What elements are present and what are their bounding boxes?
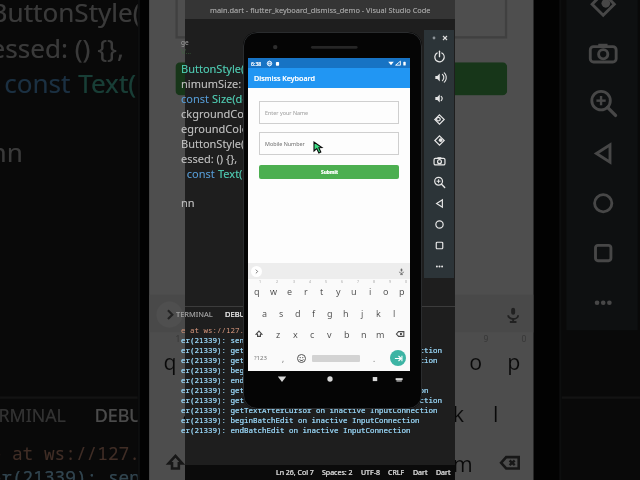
button[interactable]: TERMINAL (0, 403, 66, 427)
button[interactable]: v (321, 323, 338, 345)
button[interactable]: Minimize (429, 33, 439, 43)
button[interactable]: x (287, 323, 304, 345)
button[interactable]: Volume down (424, 88, 454, 109)
button[interactable]: Overview (368, 372, 382, 386)
button[interactable]: 2 (190, 332, 230, 384)
button[interactable]: d (290, 301, 306, 323)
button[interactable]: Expand toolbar (251, 266, 262, 277)
button[interactable]: Submit (259, 165, 399, 179)
button[interactable]: Shift (149, 437, 199, 480)
button[interactable]: UTF-8 (357, 468, 384, 478)
button[interactable]: 4 (268, 332, 306, 384)
button[interactable]: Next (385, 345, 410, 371)
button[interactable]: 3 (282, 279, 298, 301)
button[interactable]: 8 (419, 332, 457, 384)
button[interactable]: j (354, 301, 370, 323)
button[interactable]: CRLF (384, 468, 409, 478)
button[interactable]: Rotate left (424, 109, 454, 130)
button[interactable]: 0 (394, 279, 410, 301)
button[interactable]: , (272, 345, 294, 371)
button[interactable]: 5 (314, 279, 330, 301)
button[interactable]: Shift (248, 323, 269, 345)
button[interactable]: 5 (306, 332, 344, 384)
button[interactable]: Ln 26, Col 7 (272, 468, 318, 478)
button[interactable]: b (363, 437, 403, 480)
button[interactable]: ?123 (248, 345, 272, 371)
button[interactable]: Back (275, 372, 289, 386)
button[interactable]: DEBUG CONSOLE (95, 403, 242, 427)
button[interactable]: Volume up (424, 67, 454, 88)
button[interactable]: b (338, 323, 355, 345)
button[interactable]: Screenshot (424, 151, 454, 172)
button[interactable]: 2 (265, 279, 282, 301)
button[interactable]: 7 (382, 332, 419, 384)
button[interactable]: Power (424, 46, 454, 67)
button[interactable]: Home (424, 214, 454, 235)
button[interactable]: c (282, 437, 322, 480)
button[interactable]: v (322, 437, 363, 480)
button[interactable]: m (372, 323, 389, 345)
button[interactable]: Zoom (566, 79, 638, 129)
button[interactable]: Spaces: 2 (318, 468, 357, 478)
button[interactable]: h (363, 385, 401, 437)
button[interactable]: 3 (230, 332, 268, 384)
button[interactable]: Expand toolbar (156, 302, 183, 328)
button[interactable]: Rotate right (424, 130, 454, 151)
button[interactable]: k (438, 385, 476, 437)
button[interactable]: DEBUG CONSOLE (225, 309, 287, 319)
button[interactable]: d (249, 385, 287, 437)
button[interactable]: 9 (457, 332, 495, 384)
button[interactable]: More (424, 256, 454, 277)
button[interactable]: 1 (149, 332, 190, 384)
button[interactable]: Voice input (505, 306, 521, 323)
button[interactable]: Submit (175, 62, 507, 95)
button[interactable]: z (199, 437, 242, 480)
button[interactable]: More (566, 278, 638, 328)
button[interactable]: Home (323, 372, 337, 386)
button[interactable]: Mobile Number (175, 0, 507, 38)
button[interactable]: Dart (432, 468, 455, 478)
button[interactable]: n (403, 437, 443, 480)
button[interactable]: c (304, 323, 321, 345)
button[interactable]: Zoom (424, 172, 454, 193)
button[interactable]: l (386, 301, 402, 323)
button[interactable]: Back (424, 193, 454, 214)
button[interactable]: k (370, 301, 386, 323)
button[interactable]: h (338, 301, 354, 323)
button[interactable]: g (322, 301, 338, 323)
button[interactable]: 1 (248, 279, 265, 301)
button[interactable]: a (256, 301, 273, 323)
button[interactable]: Close (440, 33, 450, 43)
button[interactable]: Emoji (294, 345, 308, 371)
button[interactable]: 7 (346, 279, 362, 301)
button[interactable]: Enter your Name (259, 101, 399, 124)
button[interactable]: 6 (330, 279, 346, 301)
button[interactable]: Backspace (389, 323, 410, 345)
button[interactable]: 4 (298, 279, 314, 301)
button[interactable]: Screenshot (566, 29, 638, 79)
button[interactable]: Keyboard (392, 372, 406, 386)
button[interactable]: x (242, 437, 282, 480)
button[interactable]: f (287, 385, 325, 437)
button[interactable]: m (443, 437, 483, 480)
button[interactable]: Dart (409, 468, 432, 478)
button[interactable]: a (168, 385, 209, 437)
button[interactable]: Space (308, 345, 363, 371)
button[interactable]: TERMINAL (176, 309, 213, 319)
button[interactable]: Overview (424, 235, 454, 256)
button[interactable]: Mobile Number (259, 132, 399, 155)
button[interactable]: 6 (344, 332, 382, 384)
button[interactable]: Voice input (398, 268, 405, 275)
button[interactable]: Backspace (483, 437, 533, 480)
button[interactable]: Overview (566, 228, 638, 278)
button[interactable]: 0 (495, 332, 533, 384)
button[interactable]: Home (566, 178, 638, 228)
button[interactable]: s (209, 385, 249, 437)
button[interactable]: Back (566, 129, 638, 178)
button[interactable]: 9 (378, 279, 394, 301)
button[interactable]: Rotate right (566, 0, 638, 29)
button[interactable]: . (363, 345, 385, 371)
button[interactable]: z (269, 323, 287, 345)
button[interactable]: f (306, 301, 322, 323)
button[interactable]: g (325, 385, 363, 437)
